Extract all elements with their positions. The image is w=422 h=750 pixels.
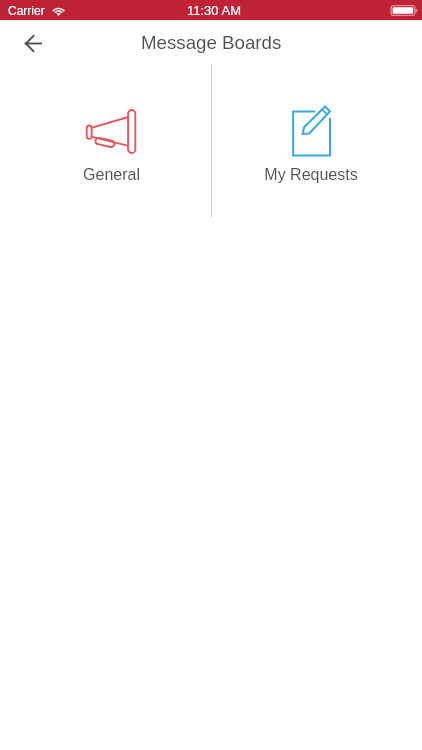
button[interactable]: General bbox=[11, 64, 211, 184]
staticText: Message Boards bbox=[141, 32, 282, 53]
staticText: 11:30 AM bbox=[187, 3, 241, 18]
staticText: My Requests bbox=[264, 166, 358, 184]
button[interactable]: My Requests bbox=[211, 64, 411, 184]
button[interactable]: Back bbox=[12, 21, 54, 63]
staticText: General bbox=[83, 166, 140, 184]
staticText: Carrier bbox=[8, 4, 45, 17]
